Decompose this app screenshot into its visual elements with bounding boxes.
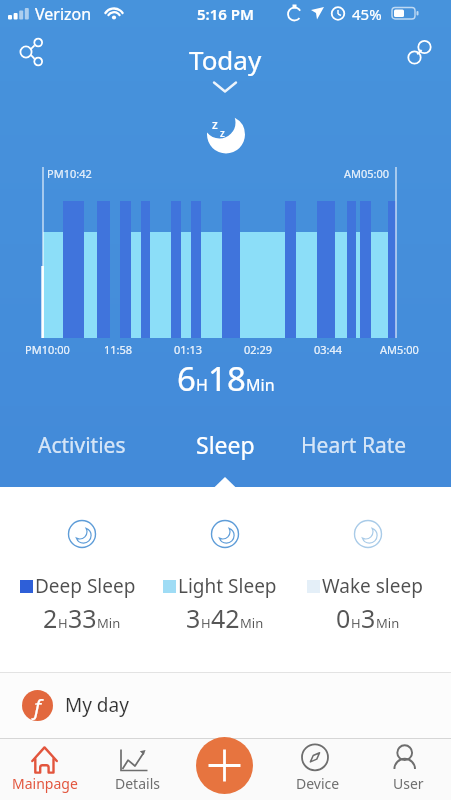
staticText: H: [58, 614, 68, 632]
button[interactable]: [12, 36, 50, 74]
staticText: PM10:42: [47, 166, 92, 181]
staticText: f: [34, 691, 41, 721]
staticText: H: [196, 374, 208, 396]
staticText: Verizon: [35, 3, 92, 25]
button[interactable]: Mainpage: [12, 738, 78, 800]
staticText: 3: [361, 601, 376, 635]
staticText: Min: [376, 614, 400, 632]
staticText: 11:58: [104, 342, 133, 357]
staticText: AM5:00: [380, 342, 419, 357]
staticText: z: [220, 126, 225, 140]
staticText: 02:29: [244, 342, 273, 357]
button[interactable]: Sleep: [188, 421, 263, 468]
button[interactable]: Device: [285, 738, 351, 800]
staticText: 2: [43, 601, 58, 635]
button[interactable]: [400, 33, 438, 71]
staticText: H: [351, 614, 361, 632]
staticText: 33: [68, 601, 97, 635]
staticText: Deep Sleep: [35, 573, 136, 599]
button[interactable]: User: [375, 738, 441, 800]
staticText: Light Sleep: [178, 573, 277, 599]
staticText: My day: [65, 692, 129, 718]
button[interactable]: Details: [104, 738, 170, 800]
staticText: 3: [186, 601, 201, 635]
button[interactable]: Today: [189, 42, 262, 77]
staticText: z: [212, 116, 218, 132]
staticText: Activities: [38, 431, 126, 460]
button[interactable]: Heart Rate: [293, 423, 415, 468]
staticText: User: [393, 774, 424, 793]
staticText: 01:13: [174, 342, 203, 357]
staticText: Heart Rate: [301, 431, 407, 460]
staticText: 0: [336, 601, 351, 635]
staticText: AM05:00: [344, 166, 390, 181]
button[interactable]: Activities: [30, 423, 134, 468]
staticText: Today: [189, 42, 262, 77]
staticText: 45%: [352, 4, 382, 24]
staticText: 42: [211, 601, 240, 635]
staticText: H: [201, 614, 211, 632]
staticText: Mainpage: [12, 774, 78, 793]
staticText: Details: [115, 774, 160, 793]
staticText: Wake sleep: [322, 573, 423, 599]
staticText: Min: [240, 614, 264, 632]
staticText: 18: [208, 356, 246, 401]
staticText: Min: [246, 374, 275, 396]
button[interactable]: f: [0, 672, 451, 738]
staticText: PM10:00: [25, 342, 70, 357]
staticText: 5:16 PM: [197, 4, 254, 24]
staticText: 03:44: [314, 342, 343, 357]
staticText: Device: [296, 774, 340, 793]
staticText: 6: [177, 356, 196, 401]
staticText: Min: [97, 614, 121, 632]
button[interactable]: [196, 737, 253, 794]
staticText: Sleep: [196, 429, 255, 460]
